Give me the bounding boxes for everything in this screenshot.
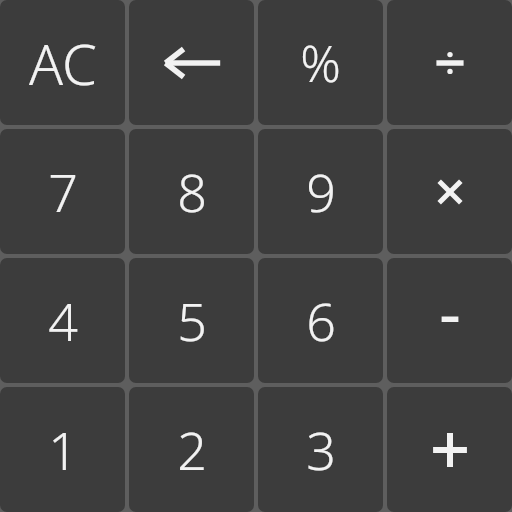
staticText: 4 [48, 285, 78, 356]
staticText: 6 [306, 285, 336, 356]
staticText: AC [29, 25, 97, 101]
button[interactable]: AC [0, 0, 125, 125]
button[interactable]: 9 [258, 129, 383, 254]
button[interactable]: 6 [258, 258, 383, 383]
button[interactable]: 4 [0, 258, 125, 383]
button[interactable]: Divide [387, 0, 512, 125]
button[interactable]: 7 [0, 129, 125, 254]
button[interactable]: % [258, 0, 383, 125]
button[interactable]: Minus [387, 258, 512, 383]
button[interactable]: 3 [258, 387, 383, 512]
staticText: 9 [306, 156, 336, 227]
button[interactable]: Plus [387, 387, 512, 512]
button[interactable]: 2 [129, 387, 254, 512]
staticText: % [300, 29, 341, 97]
button[interactable]: 5 [129, 258, 254, 383]
staticText: 3 [306, 414, 336, 485]
staticText: 2 [177, 414, 207, 485]
button[interactable]: Multiply [387, 129, 512, 254]
staticText: 5 [177, 285, 207, 356]
staticText: 7 [48, 156, 78, 227]
button[interactable]: Backspace [129, 0, 254, 125]
button[interactable]: 8 [129, 129, 254, 254]
button[interactable]: 1 [0, 387, 125, 512]
staticText: 8 [177, 156, 207, 227]
staticText: 1 [48, 414, 78, 485]
